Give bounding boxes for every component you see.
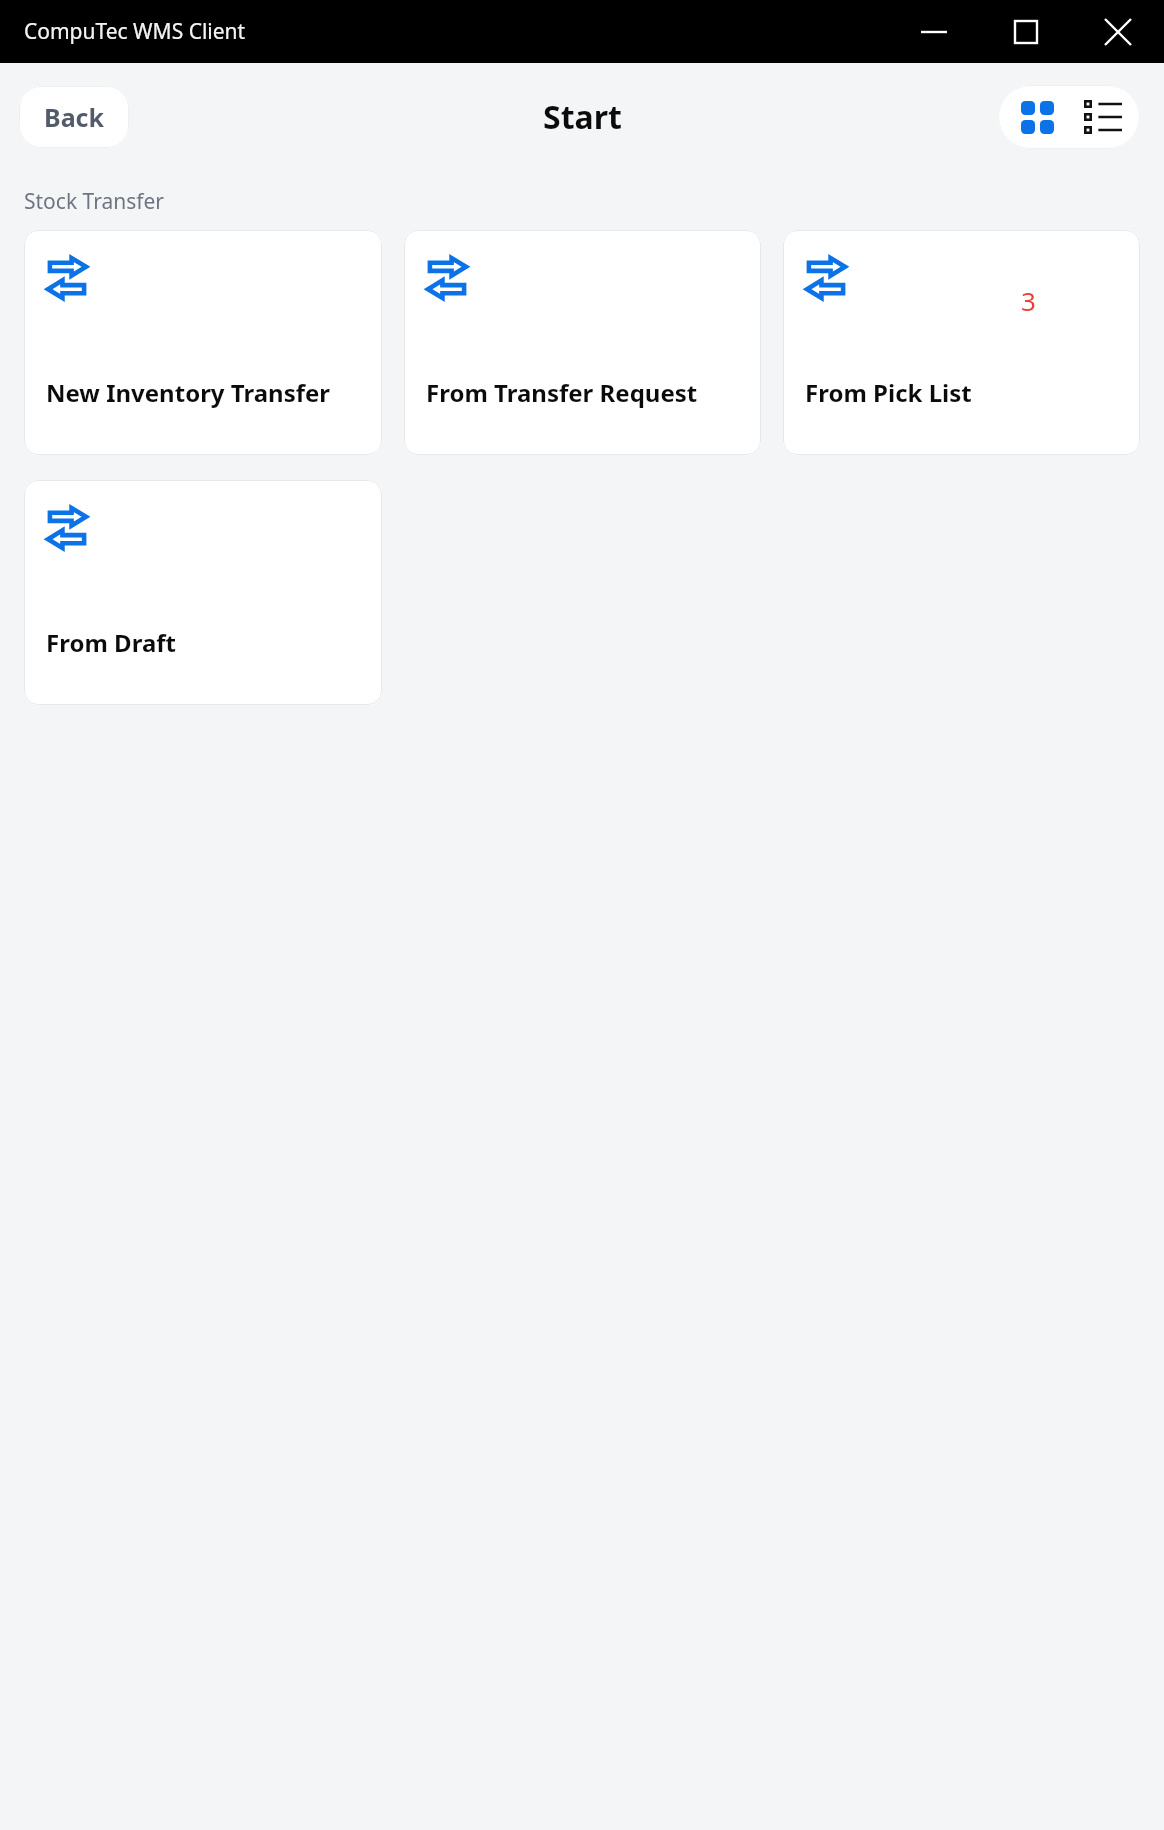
button[interactable]: Grid view	[1011, 91, 1063, 143]
staticText: From Pick List	[805, 376, 972, 409]
button[interactable]: List view	[1077, 91, 1129, 143]
staticText: 3	[1021, 283, 1036, 317]
button[interactable]: From Draft	[24, 480, 382, 705]
staticText: New Inventory Transfer	[46, 376, 331, 409]
staticText: Back	[44, 100, 105, 134]
button[interactable]: Maximize	[980, 0, 1072, 63]
staticText: From Transfer Request	[426, 376, 698, 409]
button[interactable]: Close	[1072, 0, 1164, 63]
staticText: Stock Transfer	[24, 187, 165, 216]
staticText: From Draft	[46, 626, 176, 659]
button[interactable]: New Inventory Transfer	[24, 230, 382, 455]
button[interactable]: Back	[19, 86, 129, 148]
button[interactable]: From Pick List	[783, 230, 1140, 455]
staticText: Start	[543, 95, 622, 139]
button[interactable]: Minimize	[888, 0, 980, 63]
button[interactable]: From Transfer Request	[404, 230, 761, 455]
staticText: CompuTec WMS Client	[24, 17, 246, 46]
